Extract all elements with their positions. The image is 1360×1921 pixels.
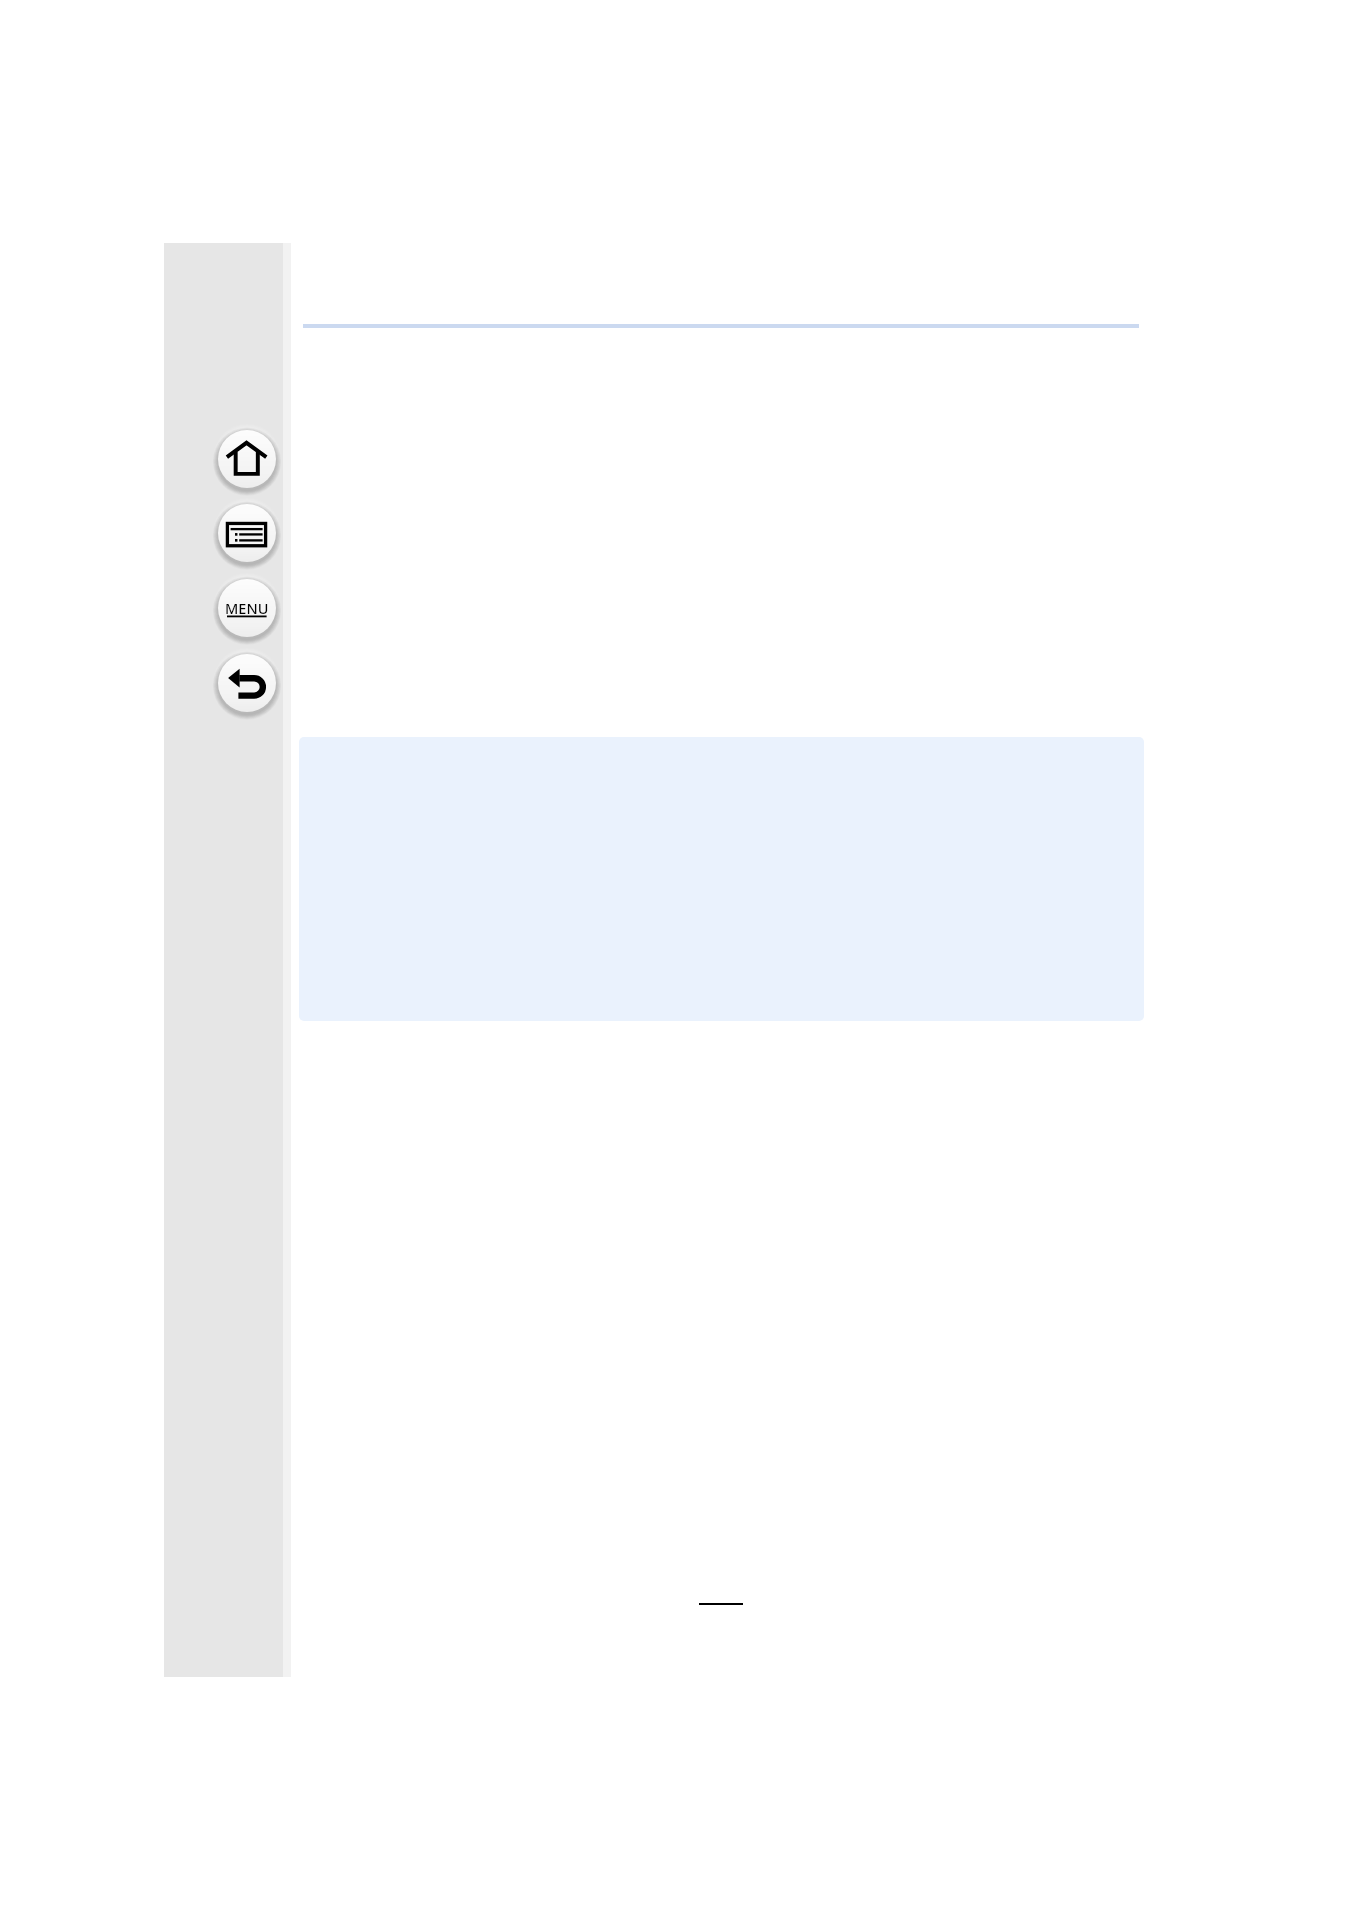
button[interactable]: Home bbox=[212, 424, 282, 494]
button[interactable]: Menu bbox=[212, 573, 282, 643]
button[interactable]: Back bbox=[212, 648, 282, 718]
button[interactable]: Contents bbox=[212, 498, 282, 568]
staticText: MENU bbox=[225, 598, 269, 618]
